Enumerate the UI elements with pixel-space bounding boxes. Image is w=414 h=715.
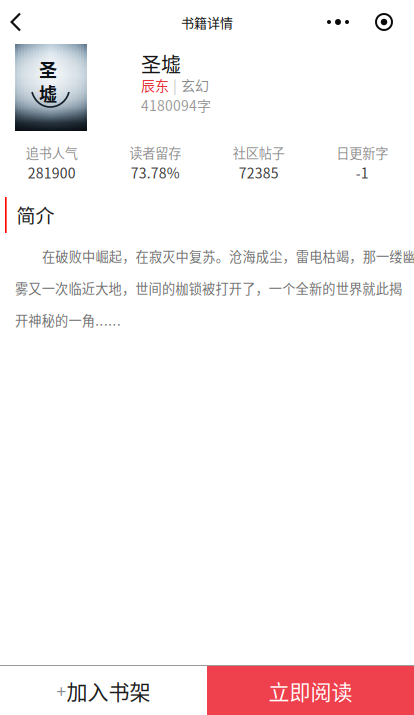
button[interactable]: Back <box>0 0 54 44</box>
button[interactable]: 立即阅读 <box>207 666 414 715</box>
staticText: 4180094字 <box>141 95 211 115</box>
staticText: 雾又一次临近大地，世间的枷锁被打开了，一个全新的世界就此揭 <box>15 278 402 297</box>
staticText: 社区帖子 <box>233 143 285 162</box>
staticText: -1 <box>356 162 369 183</box>
button[interactable]: + <box>0 666 207 715</box>
staticText: 圣墟 <box>141 49 181 78</box>
staticText: 玄幻 <box>181 75 209 95</box>
staticText: 书籍详情 <box>181 13 233 31</box>
button[interactable]: More options <box>314 0 362 44</box>
staticText: + <box>56 678 65 703</box>
staticText: 读者留存 <box>129 143 181 162</box>
staticText: 加入书架 <box>66 675 150 706</box>
staticText: 73.78% <box>131 162 180 183</box>
button[interactable]: Close <box>362 0 406 44</box>
staticText: 开神秘的一角...... <box>15 310 121 329</box>
staticText: 墟 <box>39 80 57 106</box>
staticText: 辰东 <box>141 75 169 95</box>
staticText: 简介 <box>17 201 55 229</box>
staticText: 日更新字 <box>336 143 388 162</box>
staticText: 立即阅读 <box>268 675 352 706</box>
staticText: 在破败中崛起，在寂灭中复苏。沧海成尘，雷电枯竭，那一缕幽 <box>42 246 414 265</box>
staticText: 72385 <box>239 162 279 183</box>
staticText: | <box>173 75 177 95</box>
staticText: 圣 <box>39 56 57 82</box>
staticText: 281900 <box>28 162 76 183</box>
staticText: 追书人气 <box>26 143 78 162</box>
